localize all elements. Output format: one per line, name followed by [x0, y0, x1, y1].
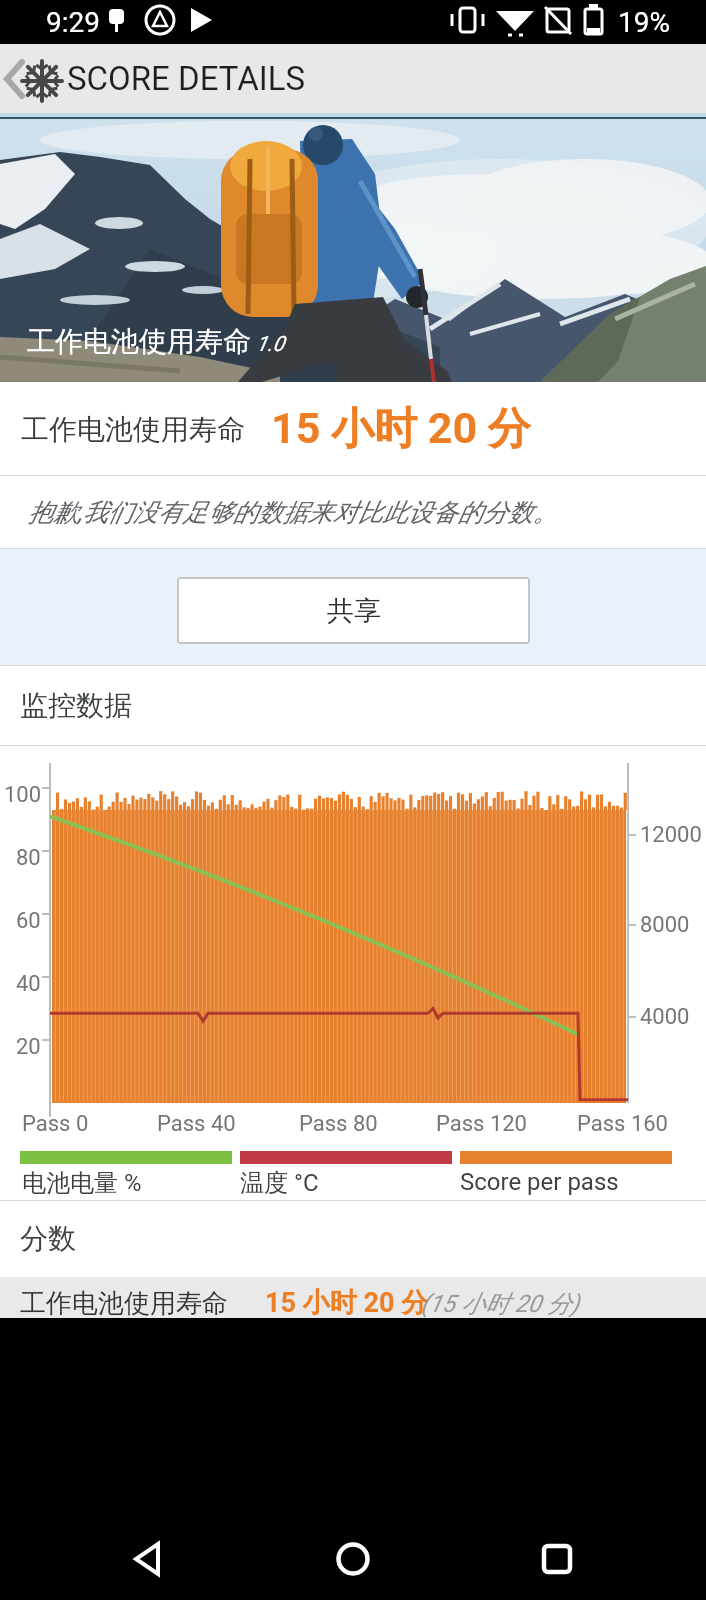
staticText: Pass 80	[299, 1111, 378, 1137]
staticText: 分数	[20, 1221, 76, 1256]
button[interactable]	[109, 1529, 189, 1589]
staticText: Pass 40	[157, 1111, 236, 1137]
button[interactable]: 共享	[177, 577, 530, 644]
staticText: 4000	[640, 1004, 690, 1030]
staticText: 工作电池使用寿命	[21, 412, 245, 447]
staticText: 工作电池使用寿命	[20, 1287, 228, 1320]
button[interactable]	[517, 1529, 597, 1589]
staticText: 抱歉,我们没有足够的数据来对比此设备的分数。	[28, 497, 558, 528]
staticText: 共享	[327, 594, 381, 628]
staticText: 8000	[640, 912, 690, 938]
staticText: 40	[16, 971, 41, 997]
staticText: 60	[16, 908, 41, 934]
staticText: 12000	[640, 822, 702, 848]
staticText: Pass 0	[22, 1111, 89, 1137]
staticText: Score per pass	[460, 1168, 619, 1196]
staticText: 监控数据	[20, 688, 132, 723]
staticText: Pass 120	[436, 1111, 527, 1137]
staticText: Pass 160	[577, 1111, 668, 1137]
staticText: 电池电量 %	[22, 1168, 142, 1198]
staticText: SCORE DETAILS	[67, 59, 306, 98]
staticText: (15 小时 20 分)	[421, 1289, 580, 1319]
staticText: 80	[16, 845, 41, 871]
button[interactable]: 工作电池使用寿命	[0, 1277, 706, 1318]
staticText: 20	[16, 1034, 41, 1060]
staticText: 温度 °C	[240, 1168, 319, 1198]
staticText: 100	[4, 782, 42, 808]
staticText: 15 小时 20 分	[271, 402, 531, 456]
button[interactable]	[313, 1529, 393, 1589]
button[interactable]: SCORE DETAILS	[0, 44, 706, 113]
staticText: 工作电池使用寿命	[27, 324, 251, 359]
staticText: 1.0	[256, 332, 285, 357]
staticText: 15 小时 20 分	[265, 1286, 429, 1320]
staticText: 19%	[618, 6, 670, 39]
staticText: 9:29	[46, 6, 100, 39]
